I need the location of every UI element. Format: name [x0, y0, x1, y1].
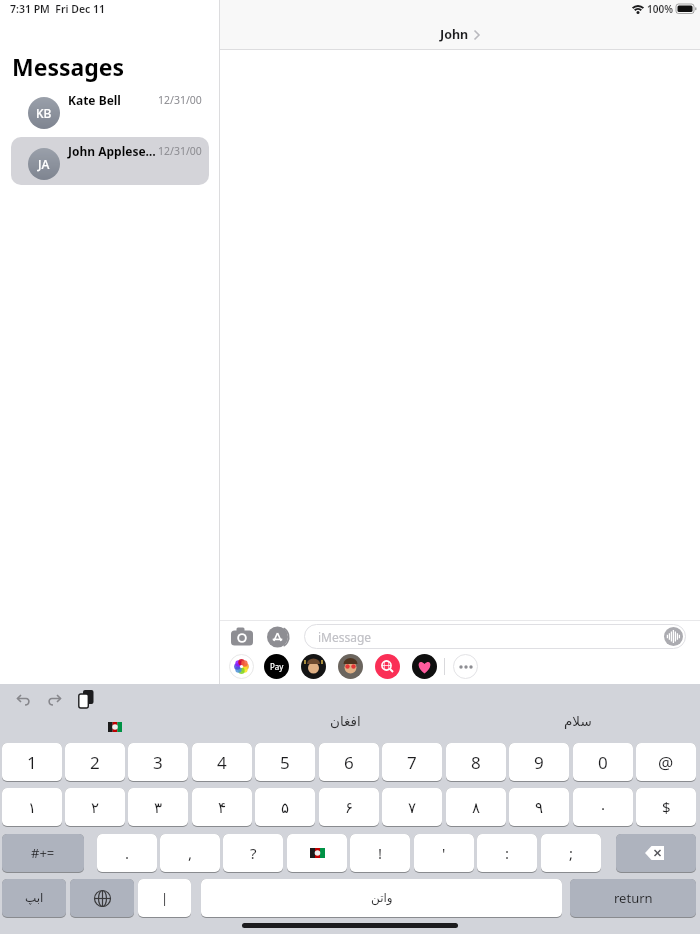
staticText: Kate Bell: [68, 92, 121, 108]
staticText: 4: [217, 751, 227, 774]
button[interactable]: [301, 654, 326, 679]
button[interactable]: ابپ: [2, 879, 66, 918]
staticText: ;: [569, 843, 574, 863]
button[interactable]: [78, 690, 94, 709]
button[interactable]: [375, 654, 400, 679]
button[interactable]: |: [138, 879, 191, 918]
button[interactable]: $: [636, 788, 696, 827]
staticText: ۵: [281, 799, 290, 816]
button[interactable]: [338, 654, 363, 679]
staticText: ۱: [28, 799, 37, 816]
button[interactable]: ,: [160, 834, 220, 873]
button[interactable]: ۶: [319, 788, 379, 827]
staticText: @: [658, 751, 674, 774]
staticText: ۲: [91, 799, 100, 816]
staticText: John Applese…: [68, 143, 156, 159]
button[interactable]: JA: [11, 137, 209, 185]
staticText: 12/31/00: [158, 93, 202, 107]
staticText: واتن: [371, 891, 393, 905]
staticText: 6: [344, 751, 354, 774]
staticText: ۷: [408, 799, 417, 816]
staticText: 3: [153, 751, 163, 774]
button[interactable]: 6: [319, 743, 379, 782]
button[interactable]: [17, 693, 31, 706]
staticText: افغان: [330, 713, 361, 729]
staticText: Messages: [12, 51, 125, 82]
button[interactable]: [229, 654, 254, 679]
button[interactable]: 9: [509, 743, 569, 782]
button[interactable]: ۵: [255, 788, 315, 827]
staticText: 8: [471, 751, 481, 774]
staticText: 9: [534, 751, 544, 774]
staticText: :: [505, 843, 510, 863]
button[interactable]: ۹: [509, 788, 569, 827]
staticText: 7: [407, 751, 417, 774]
staticText: iMessage: [318, 629, 372, 645]
staticText: ۴: [218, 799, 227, 816]
button[interactable]: [47, 693, 61, 706]
button[interactable]: [412, 654, 437, 679]
button[interactable]: @: [636, 743, 696, 782]
button[interactable]: ': [414, 834, 474, 873]
staticText: 2: [90, 751, 100, 774]
button[interactable]: ۸: [446, 788, 506, 827]
staticText: ۳: [154, 799, 163, 816]
staticText: !: [378, 843, 383, 863]
staticText: ۸: [472, 799, 481, 816]
button[interactable]: Pay: [264, 654, 289, 679]
button[interactable]: John: [220, 20, 700, 49]
button[interactable]: 4: [192, 743, 252, 782]
staticText: KB: [36, 105, 52, 121]
button[interactable]: KB: [11, 86, 209, 134]
staticText: 7:31 PM Fri Dec 11: [10, 2, 106, 16]
staticText: ': [442, 843, 446, 863]
staticText: ?: [250, 843, 257, 863]
button[interactable]: ۲: [65, 788, 125, 827]
staticText: |: [161, 889, 169, 907]
button[interactable]: #+=: [2, 834, 84, 873]
button[interactable]: ۰: [573, 788, 633, 827]
button[interactable]: ۱: [2, 788, 62, 827]
staticText: ابپ: [25, 891, 44, 905]
button[interactable]: [70, 879, 134, 918]
button[interactable]: iMessage: [304, 624, 686, 649]
staticText: $: [662, 797, 671, 817]
button[interactable]: !: [350, 834, 410, 873]
button[interactable]: 8: [446, 743, 506, 782]
button[interactable]: 2: [65, 743, 125, 782]
button[interactable]: ۳: [128, 788, 188, 827]
staticText: 12/31/00: [158, 144, 202, 158]
staticText: 0: [598, 751, 608, 774]
button[interactable]: [287, 834, 347, 873]
staticText: John: [440, 26, 469, 43]
button[interactable]: 1: [2, 743, 62, 782]
staticText: Pay: [270, 661, 284, 672]
button[interactable]: [453, 654, 478, 679]
button[interactable]: 3: [128, 743, 188, 782]
button[interactable]: .: [97, 834, 157, 873]
button[interactable]: ۴: [192, 788, 252, 827]
button[interactable]: ?: [223, 834, 283, 873]
button[interactable]: واتن: [201, 879, 562, 918]
staticText: سلام: [564, 713, 592, 729]
button[interactable]: [231, 627, 253, 645]
staticText: 100%: [647, 2, 673, 15]
button[interactable]: ۷: [382, 788, 442, 827]
staticText: JA: [38, 156, 50, 172]
button[interactable]: 0: [573, 743, 633, 782]
button[interactable]: return: [570, 879, 696, 918]
button[interactable]: 5: [255, 743, 315, 782]
button[interactable]: [267, 626, 293, 648]
staticText: ۹: [535, 799, 544, 816]
staticText: ۶: [345, 799, 354, 816]
button[interactable]: 7: [382, 743, 442, 782]
staticText: .: [125, 843, 130, 863]
button[interactable]: :: [477, 834, 537, 873]
staticText: return: [614, 889, 653, 907]
staticText: ,: [188, 843, 193, 863]
staticText: 1: [27, 751, 37, 774]
button[interactable]: [616, 834, 696, 873]
staticText: 5: [280, 751, 290, 774]
staticText: ۰: [599, 799, 608, 816]
button[interactable]: ;: [541, 834, 601, 873]
